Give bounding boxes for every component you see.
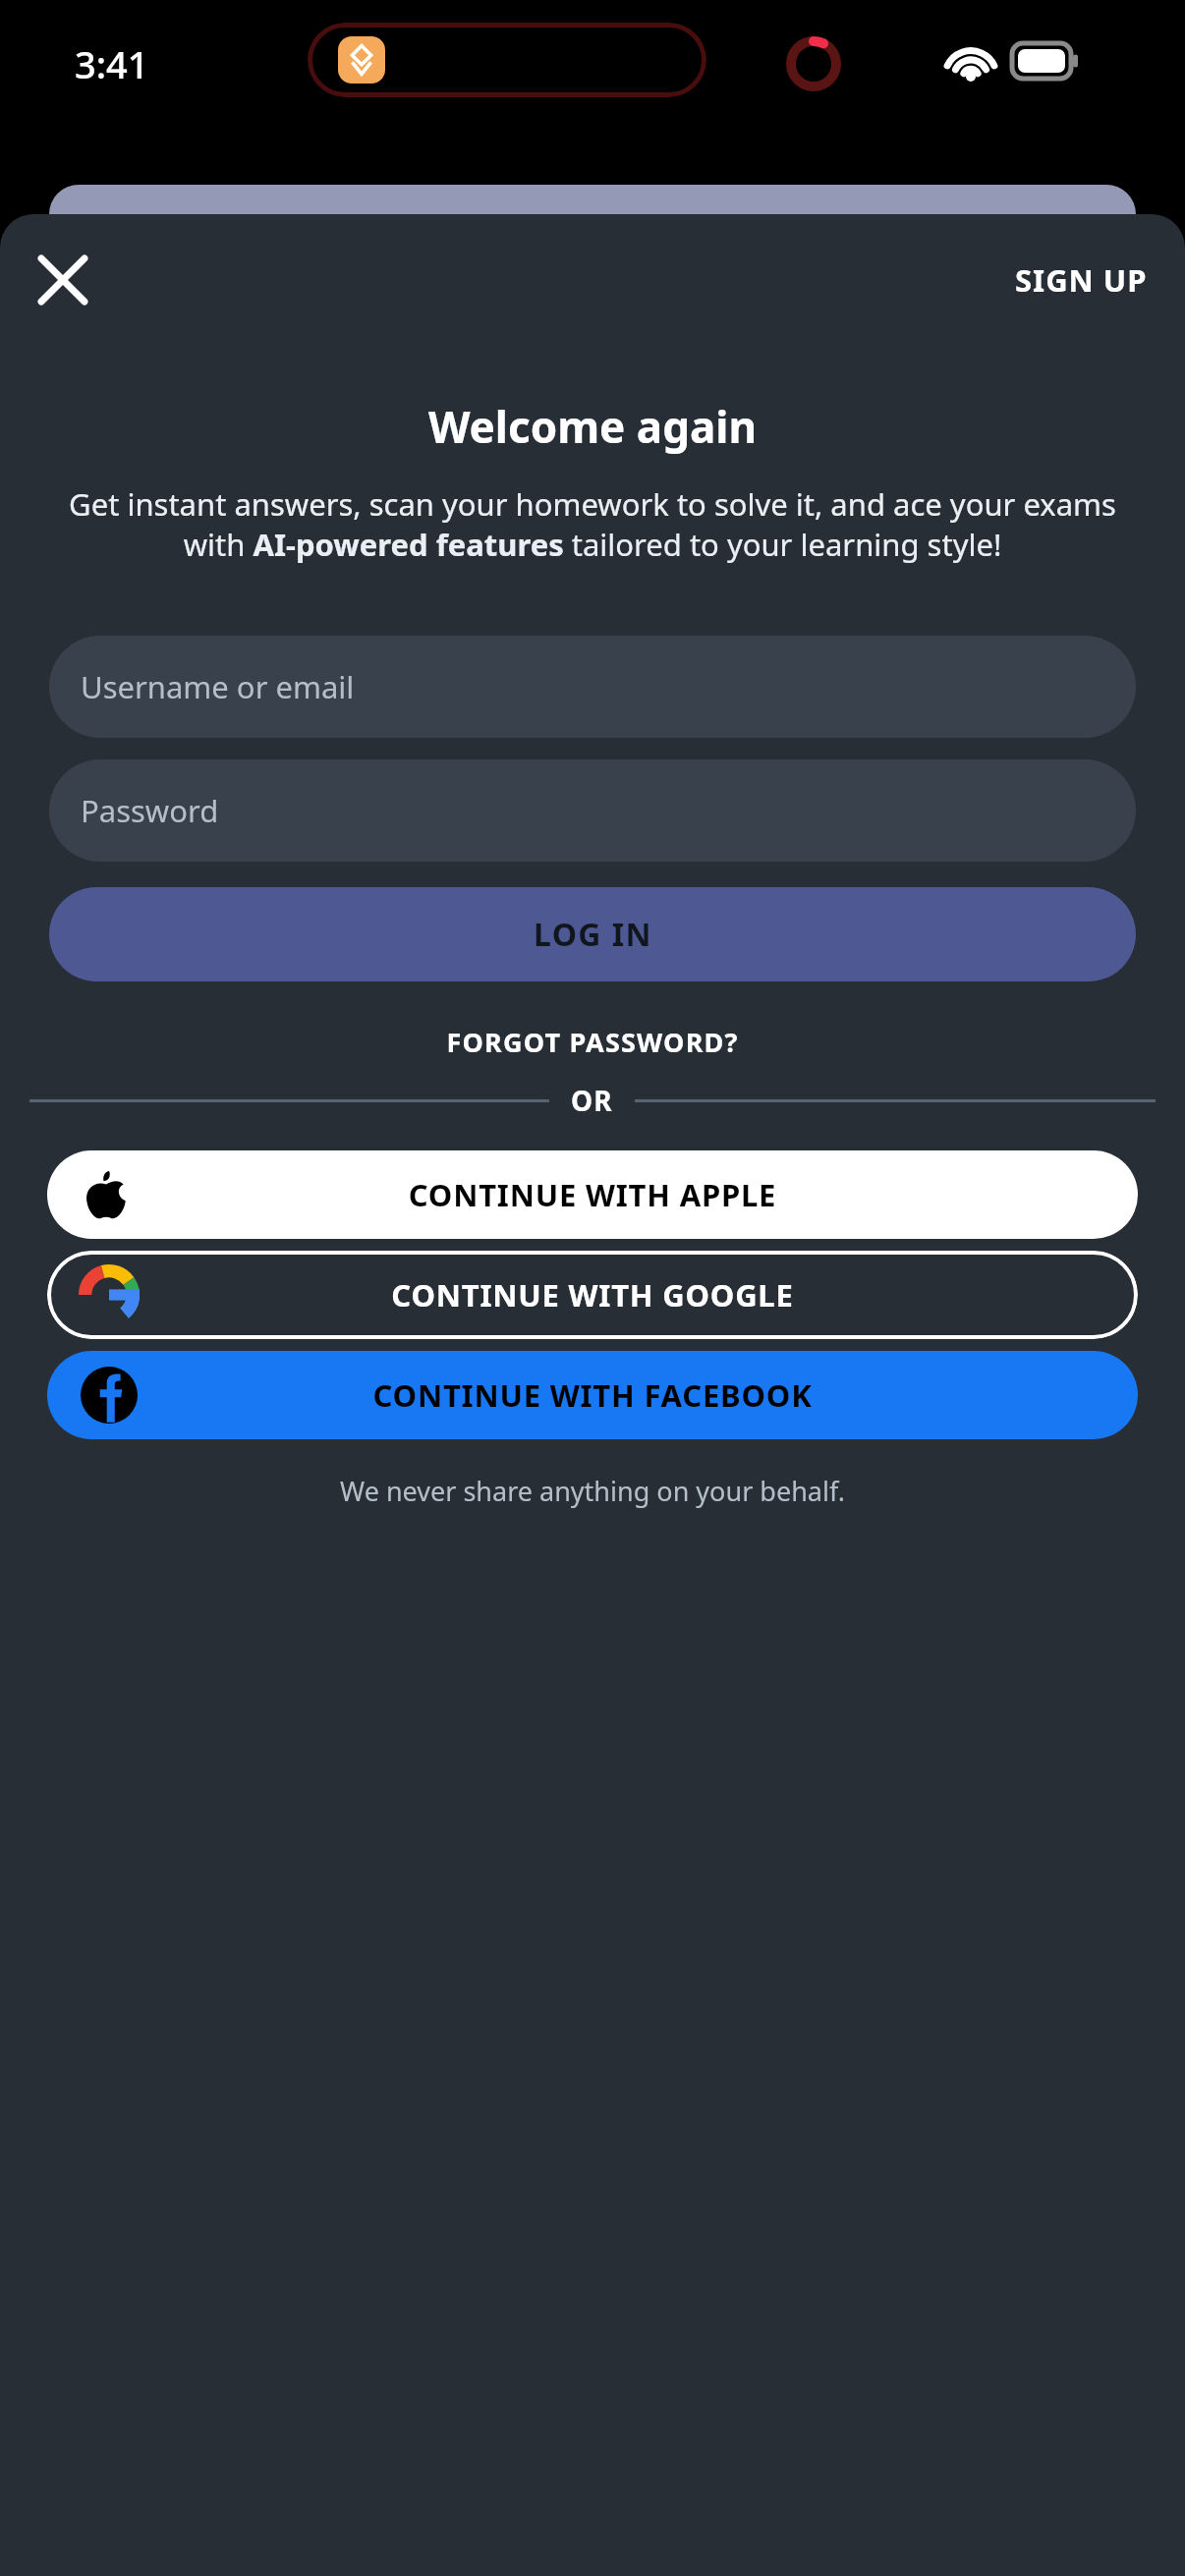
button[interactable]: Password bbox=[49, 759, 1136, 862]
button[interactable]: CONTINUE WITH APPLE bbox=[47, 1150, 1138, 1239]
staticText: LOG IN bbox=[534, 913, 652, 956]
staticText: Get instant answers, scan your homework … bbox=[43, 483, 1142, 565]
button[interactable]: FORGOT PASSWORD? bbox=[0, 1015, 1185, 1068]
button[interactable]: SIGN UP bbox=[1005, 248, 1157, 312]
staticText: 3:41 bbox=[75, 38, 149, 89]
staticText: CONTINUE WITH GOOGLE bbox=[47, 1274, 1138, 1316]
staticText: Password bbox=[81, 790, 219, 831]
button[interactable]: CONTINUE WITH FACEBOOK bbox=[47, 1351, 1138, 1439]
staticText: Username or email bbox=[81, 666, 355, 707]
button[interactable]: LOG IN bbox=[49, 887, 1136, 981]
button[interactable]: Close bbox=[26, 243, 100, 317]
staticText: CONTINUE WITH FACEBOOK bbox=[47, 1374, 1138, 1416]
button[interactable]: Username or email bbox=[49, 636, 1136, 738]
button[interactable]: CONTINUE WITH GOOGLE bbox=[47, 1251, 1138, 1339]
staticText: FORGOT PASSWORD? bbox=[446, 1024, 739, 1060]
staticText: SIGN UP bbox=[1015, 259, 1148, 301]
staticText: OR bbox=[571, 1082, 613, 1119]
staticText: CONTINUE WITH APPLE bbox=[47, 1174, 1138, 1215]
staticText: Welcome again bbox=[0, 397, 1185, 456]
staticText: We never share anything on your behalf. bbox=[0, 1473, 1185, 1509]
